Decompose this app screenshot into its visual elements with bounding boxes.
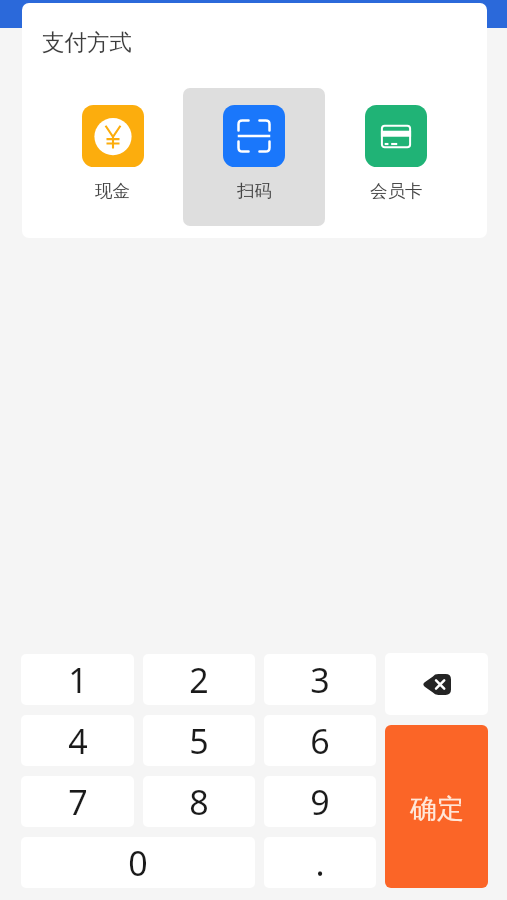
button[interactable]: 3 xyxy=(264,654,376,705)
button[interactable]: 4 xyxy=(21,715,134,766)
button[interactable]: 现金 xyxy=(42,88,183,226)
button[interactable]: 会员卡 xyxy=(325,88,467,226)
staticText: 确定 xyxy=(410,792,464,826)
button[interactable]: 2 xyxy=(143,654,255,705)
staticText: 5 xyxy=(189,718,209,764)
button[interactable]: 确定 xyxy=(385,725,488,888)
button[interactable]: 扫码 xyxy=(183,88,325,226)
staticText: 扫码 xyxy=(237,180,272,202)
staticText: 3 xyxy=(310,657,330,703)
button[interactable]: 1 xyxy=(21,654,134,705)
staticText: 2 xyxy=(189,657,209,703)
staticText: 0 xyxy=(128,840,148,886)
staticText: 9 xyxy=(310,779,330,825)
button[interactable]: 7 xyxy=(21,776,134,827)
button[interactable]: 9 xyxy=(264,776,376,827)
button[interactable]: 6 xyxy=(264,715,376,766)
staticText: 7 xyxy=(68,779,88,825)
staticText: 6 xyxy=(310,718,330,764)
staticText: 现金 xyxy=(95,180,130,202)
staticText: 会员卡 xyxy=(370,180,423,202)
staticText: 8 xyxy=(189,779,209,825)
staticText: 支付方式 xyxy=(42,28,132,56)
button[interactable]: 0 xyxy=(21,837,255,888)
button[interactable]: 8 xyxy=(143,776,255,827)
staticText: 1 xyxy=(68,657,88,703)
button[interactable]: 5 xyxy=(143,715,255,766)
button[interactable]: . xyxy=(264,837,376,888)
staticText: 4 xyxy=(68,718,88,764)
button[interactable]: Backspace xyxy=(385,653,488,715)
staticText: . xyxy=(315,840,325,886)
